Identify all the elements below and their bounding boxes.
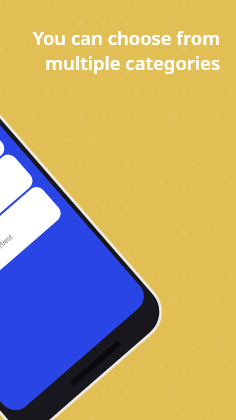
staticText: You can choose from multiple categories xyxy=(32,25,220,75)
